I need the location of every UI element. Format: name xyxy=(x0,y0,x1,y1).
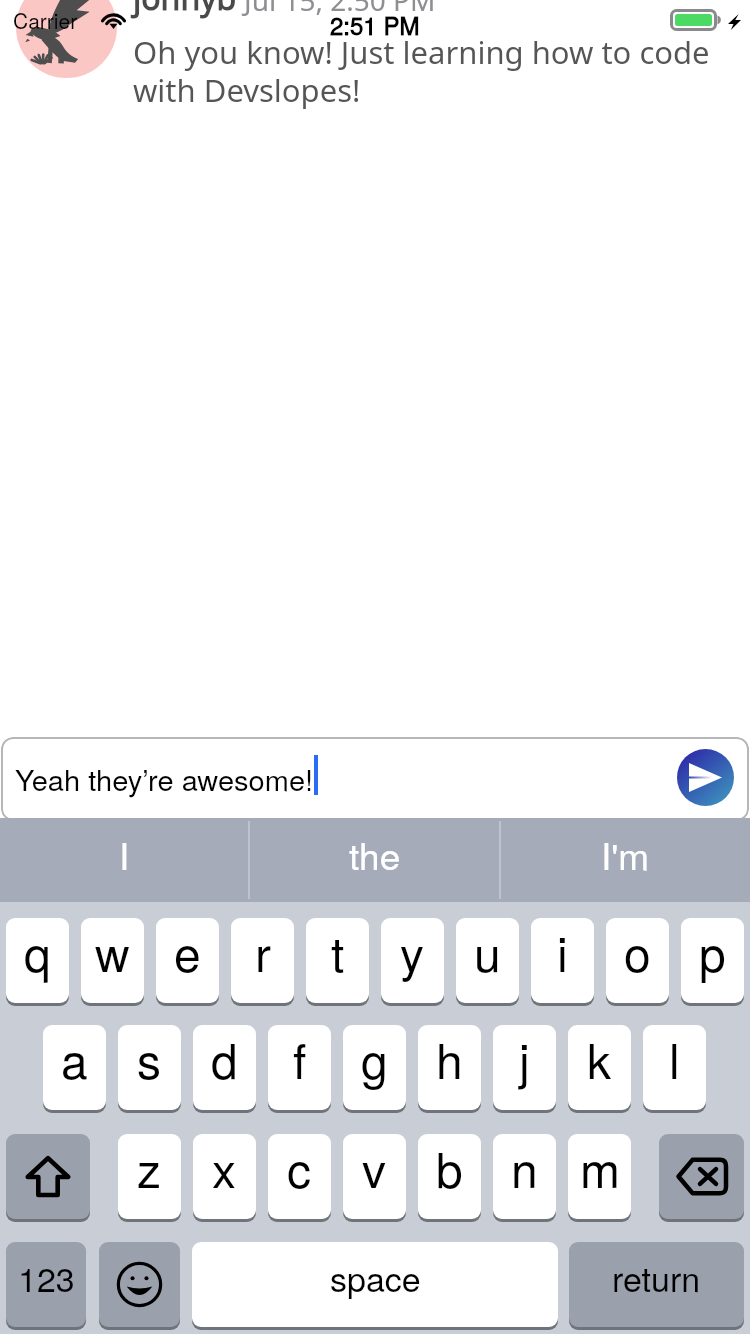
button[interactable]: e xyxy=(156,918,219,1003)
staticText: e xyxy=(174,917,201,986)
button[interactable]: Backspace xyxy=(659,1134,744,1219)
button[interactable]: g xyxy=(343,1025,406,1110)
staticText: n xyxy=(511,1133,538,1202)
staticText: 2:51 PM xyxy=(330,7,420,41)
button[interactable]: u xyxy=(456,918,519,1003)
staticText: return xyxy=(612,1253,701,1302)
button[interactable]: d xyxy=(193,1025,256,1110)
button[interactable]: l xyxy=(643,1025,706,1110)
button[interactable]: j xyxy=(493,1025,556,1110)
button[interactable]: m xyxy=(568,1134,631,1219)
staticText: j xyxy=(519,1024,530,1093)
staticText: i xyxy=(557,917,568,986)
button[interactable]: space xyxy=(192,1242,558,1327)
button[interactable]: s xyxy=(118,1025,181,1110)
button[interactable]: c xyxy=(268,1134,331,1219)
staticText: v xyxy=(362,1133,387,1202)
staticText: b xyxy=(436,1133,463,1202)
staticText: z xyxy=(137,1133,162,1202)
staticText: Jul 15, 2:50 PM xyxy=(244,0,436,19)
button[interactable]: o xyxy=(606,918,669,1003)
staticText: p xyxy=(699,917,726,986)
button[interactable]: I xyxy=(0,818,248,902)
staticText: y xyxy=(400,917,425,986)
button[interactable]: Shift xyxy=(6,1134,90,1219)
button[interactable]: 123 xyxy=(6,1242,86,1327)
staticText: x xyxy=(212,1133,237,1202)
button[interactable]: a xyxy=(43,1025,106,1110)
staticText: Oh you know! Just learning how to code w… xyxy=(133,31,713,111)
staticText: w xyxy=(95,917,130,986)
staticText: f xyxy=(293,1024,307,1093)
staticText: l xyxy=(669,1024,680,1093)
button[interactable]: I'm xyxy=(501,818,750,902)
staticText: d xyxy=(211,1024,238,1093)
staticText: 123 xyxy=(18,1253,75,1302)
staticText: Yeah they’re awesome! xyxy=(15,758,314,800)
staticText: s xyxy=(137,1024,162,1093)
button[interactable]: y xyxy=(381,918,444,1003)
staticText: r xyxy=(255,917,271,986)
staticText: g xyxy=(361,1024,388,1093)
staticText: I xyxy=(119,828,130,881)
staticText: o xyxy=(624,917,651,986)
staticText: t xyxy=(331,917,345,986)
staticText: u xyxy=(474,917,501,986)
button[interactable]: t xyxy=(306,918,369,1003)
button[interactable]: w xyxy=(81,918,144,1003)
staticText: the xyxy=(349,828,401,881)
button[interactable]: b xyxy=(418,1134,481,1219)
staticText: space xyxy=(330,1253,421,1302)
button[interactable]: v xyxy=(343,1134,406,1219)
button[interactable]: k xyxy=(568,1025,631,1110)
staticText: k xyxy=(587,1024,612,1093)
staticText: c xyxy=(287,1133,312,1202)
button[interactable]: r xyxy=(231,918,294,1003)
button[interactable]: i xyxy=(531,918,594,1003)
button[interactable]: h xyxy=(418,1025,481,1110)
button[interactable]: x xyxy=(193,1134,256,1219)
staticText: h xyxy=(436,1024,463,1093)
button[interactable]: n xyxy=(493,1134,556,1219)
button[interactable]: q xyxy=(6,918,69,1003)
staticText: a xyxy=(61,1024,88,1093)
staticText: m xyxy=(580,1133,620,1202)
staticText: Carrier xyxy=(13,5,78,35)
button[interactable]: Send xyxy=(677,749,734,806)
button[interactable]: p xyxy=(681,918,744,1003)
staticText: johnyb xyxy=(133,0,237,20)
button[interactable]: f xyxy=(268,1025,331,1110)
button[interactable]: Emoji keyboard xyxy=(99,1242,180,1327)
button[interactable]: the xyxy=(250,818,499,902)
button[interactable]: z xyxy=(118,1134,181,1219)
button[interactable]: return xyxy=(569,1242,744,1327)
staticText: I'm xyxy=(601,828,650,881)
staticText: q xyxy=(24,917,51,986)
